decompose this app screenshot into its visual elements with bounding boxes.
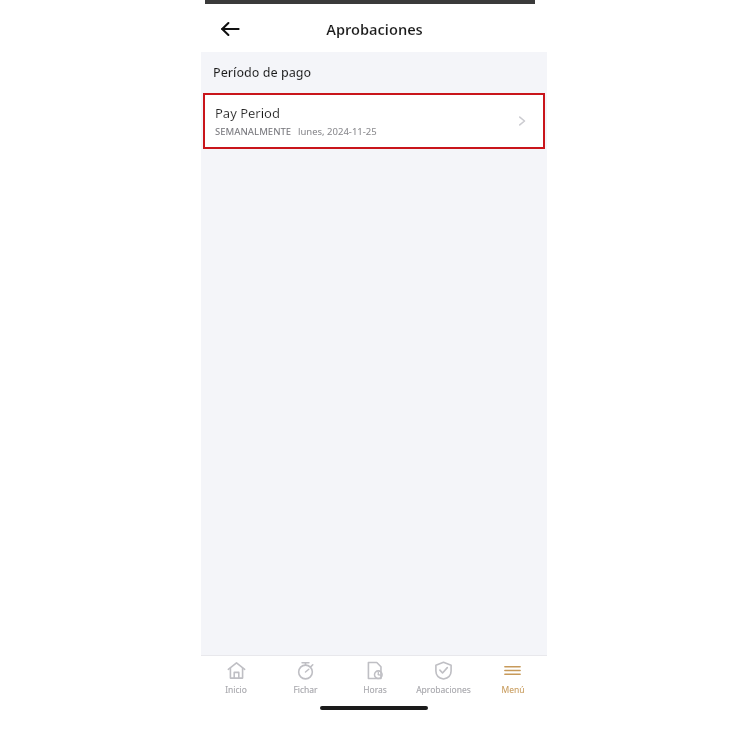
staticText: Período de pago — [213, 64, 312, 81]
staticText: Aprobaciones — [326, 19, 423, 39]
button[interactable]: Pay Period — [205, 95, 543, 147]
button[interactable]: Fichar — [271, 656, 340, 700]
staticText: Menú — [501, 684, 525, 696]
staticText: Pay Period — [215, 104, 280, 122]
button[interactable]: Horas — [340, 656, 409, 700]
staticText: SEMANALMENTE — [215, 125, 292, 138]
button[interactable]: Back — [210, 9, 250, 49]
staticText: lunes, 2024-11-25 — [298, 125, 377, 138]
button[interactable]: Menú — [478, 656, 547, 700]
staticText: Aprobaciones — [416, 684, 471, 696]
staticText: Fichar — [293, 684, 318, 696]
staticText: Inicio — [225, 684, 247, 696]
button[interactable]: Aprobaciones — [409, 656, 478, 700]
button[interactable]: Inicio — [201, 656, 271, 700]
staticText: Horas — [363, 684, 387, 696]
